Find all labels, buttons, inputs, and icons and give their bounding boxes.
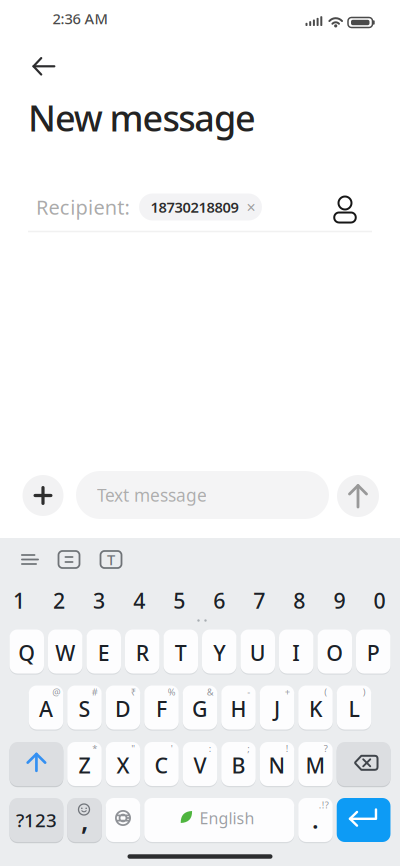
staticText: ! [286, 742, 289, 755]
staticText: # [92, 686, 98, 698]
staticText: + [285, 686, 290, 698]
staticText: G [192, 694, 208, 723]
staticText: K [309, 694, 322, 723]
staticText: × [246, 196, 255, 218]
button[interactable]: Space [144, 798, 294, 842]
button[interactable]: I [279, 629, 313, 673]
button[interactable]: J [260, 685, 294, 729]
staticText: Z [78, 751, 90, 779]
staticText: A [39, 694, 53, 723]
staticText: 4 [133, 586, 145, 615]
button[interactable]: Return [337, 798, 390, 842]
button[interactable]: 1 [4, 583, 34, 617]
staticText: , [81, 803, 88, 838]
button[interactable]: Period [298, 798, 333, 842]
button[interactable]: Text editing [100, 551, 121, 568]
button[interactable]: Switch keyboard [106, 798, 140, 842]
staticText: 9 [333, 586, 345, 615]
button[interactable]: 5 [164, 583, 194, 617]
staticText: N [268, 751, 285, 779]
staticText: 8 [293, 586, 305, 615]
button[interactable]: P [356, 629, 390, 673]
staticText: J [274, 694, 280, 723]
staticText: ?123 [16, 808, 57, 832]
button[interactable]: F [144, 685, 179, 729]
staticText: X [116, 751, 129, 779]
button[interactable]: L [337, 685, 371, 729]
staticText: P [367, 638, 380, 667]
staticText: O [326, 638, 343, 667]
button[interactable]: A [29, 685, 63, 729]
button[interactable]: Clipboard [58, 551, 79, 568]
button[interactable]: E [86, 629, 121, 673]
staticText: 5 [173, 586, 185, 615]
button[interactable]: H [221, 685, 256, 729]
button[interactable]: Keyboard settings [21, 554, 39, 565]
button[interactable]: 18730218809 [139, 193, 262, 220]
staticText: E [98, 638, 110, 667]
staticText: I [292, 638, 300, 667]
button[interactable]: Y [202, 629, 236, 673]
button[interactable]: T [163, 629, 198, 673]
staticText: @ [52, 686, 60, 698]
button[interactable]: 4 [124, 583, 154, 617]
button[interactable]: 2 [44, 583, 74, 617]
button[interactable]: D [106, 685, 140, 729]
staticText: B [231, 751, 245, 779]
staticText: 2 [53, 586, 65, 615]
staticText: 7 [253, 586, 265, 615]
button[interactable]: 6 [204, 583, 234, 617]
button[interactable]: B [221, 742, 256, 786]
staticText: 18730218809 [150, 197, 238, 217]
button[interactable]: Text message [76, 471, 329, 519]
button[interactable]: Delete [337, 742, 390, 786]
button[interactable]: Choose contact [332, 195, 357, 223]
button[interactable]: O [317, 629, 352, 673]
button[interactable]: N [260, 742, 294, 786]
staticText: 1 [13, 586, 25, 615]
button[interactable]: 8 [284, 583, 314, 617]
button[interactable]: Send [337, 475, 379, 517]
staticText: .!? [319, 799, 329, 811]
staticText: T [175, 638, 187, 667]
button[interactable]: Symbols [9, 798, 63, 842]
button[interactable]: U [240, 629, 275, 673]
button[interactable]: Q [9, 629, 44, 673]
staticText: ? [324, 742, 328, 755]
staticText: C [154, 751, 168, 779]
button[interactable]: C [144, 742, 179, 786]
staticText: ; [247, 742, 250, 755]
button[interactable]: Z [67, 742, 102, 786]
staticText: M [305, 751, 325, 779]
staticText: Recipient: [36, 194, 130, 220]
staticText: " [131, 742, 135, 755]
button[interactable]: V [183, 742, 217, 786]
button[interactable]: R [125, 629, 159, 673]
button[interactable]: Comma [67, 798, 102, 842]
staticText: & [207, 686, 214, 698]
button[interactable]: 7 [244, 583, 274, 617]
staticText: U [250, 638, 266, 667]
staticText: New message [28, 94, 256, 141]
button[interactable]: 0 [364, 583, 394, 617]
staticText: English [199, 807, 254, 829]
staticText: T [107, 550, 115, 569]
button[interactable]: Back [32, 56, 54, 76]
button[interactable]: 9 [324, 583, 354, 617]
button[interactable]: M [298, 742, 333, 786]
button[interactable]: X [106, 742, 140, 786]
button[interactable]: W [48, 629, 82, 673]
button[interactable]: Add attachment [22, 475, 63, 516]
staticText: - [247, 686, 250, 698]
staticText: H [230, 694, 246, 723]
button[interactable]: 3 [84, 583, 114, 617]
button[interactable]: S [67, 685, 102, 729]
staticText: 0 [373, 586, 385, 615]
staticText: : [209, 742, 212, 755]
staticText: R [136, 638, 149, 667]
staticText: S [78, 694, 90, 723]
button[interactable]: K [298, 685, 333, 729]
button[interactable]: G [183, 685, 217, 729]
staticText: F [156, 694, 167, 723]
button[interactable]: Shift [9, 742, 63, 786]
